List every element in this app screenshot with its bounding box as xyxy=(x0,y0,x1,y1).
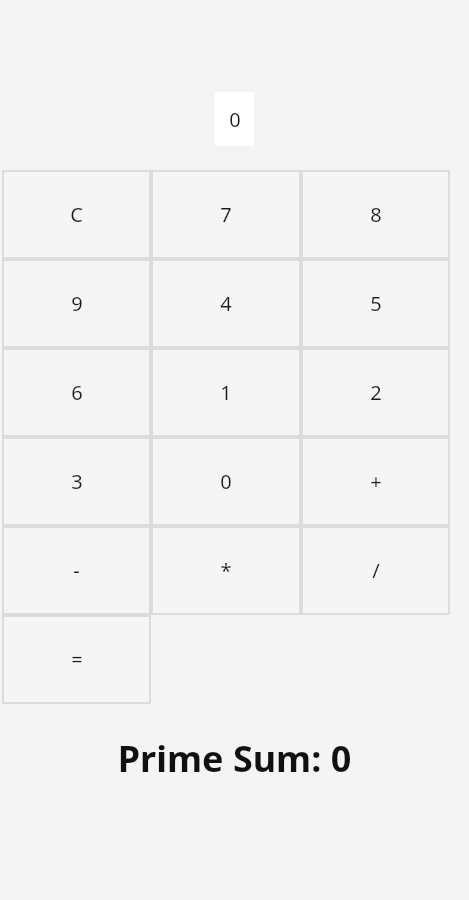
staticText: + xyxy=(370,468,382,495)
button[interactable]: 6 xyxy=(4,350,149,435)
button[interactable]: 7 xyxy=(153,172,299,257)
staticText: 0 xyxy=(229,106,241,133)
button[interactable]: 1 xyxy=(153,350,299,435)
button[interactable]: C xyxy=(4,172,149,257)
staticText: 8 xyxy=(370,201,382,228)
staticText: = xyxy=(71,646,83,673)
button[interactable]: 2 xyxy=(303,350,448,435)
staticText: / xyxy=(372,557,380,584)
staticText: 3 xyxy=(71,468,83,495)
button[interactable]: 9 xyxy=(4,261,149,346)
staticText: 5 xyxy=(370,290,382,317)
button[interactable]: 8 xyxy=(303,172,448,257)
button[interactable]: Display xyxy=(215,92,254,146)
staticText: 7 xyxy=(220,201,232,228)
button[interactable]: + xyxy=(303,439,448,524)
button[interactable]: 4 xyxy=(153,261,299,346)
staticText: - xyxy=(73,557,80,584)
staticText: 4 xyxy=(220,290,232,317)
staticText: 0 xyxy=(220,468,232,495)
button[interactable]: 5 xyxy=(303,261,448,346)
staticText: Prime Sum: 0 xyxy=(0,734,469,783)
button[interactable]: Equals xyxy=(4,617,149,702)
staticText: 2 xyxy=(370,379,382,406)
staticText: 6 xyxy=(71,379,83,406)
button[interactable]: 0 xyxy=(153,439,299,524)
button[interactable]: / xyxy=(303,528,448,613)
button[interactable]: 3 xyxy=(4,439,149,524)
staticText: * xyxy=(220,557,232,584)
button[interactable]: * xyxy=(153,528,299,613)
staticText: 1 xyxy=(220,379,232,406)
staticText: C xyxy=(70,201,83,228)
staticText: 9 xyxy=(71,290,83,317)
button[interactable]: - xyxy=(4,528,149,613)
